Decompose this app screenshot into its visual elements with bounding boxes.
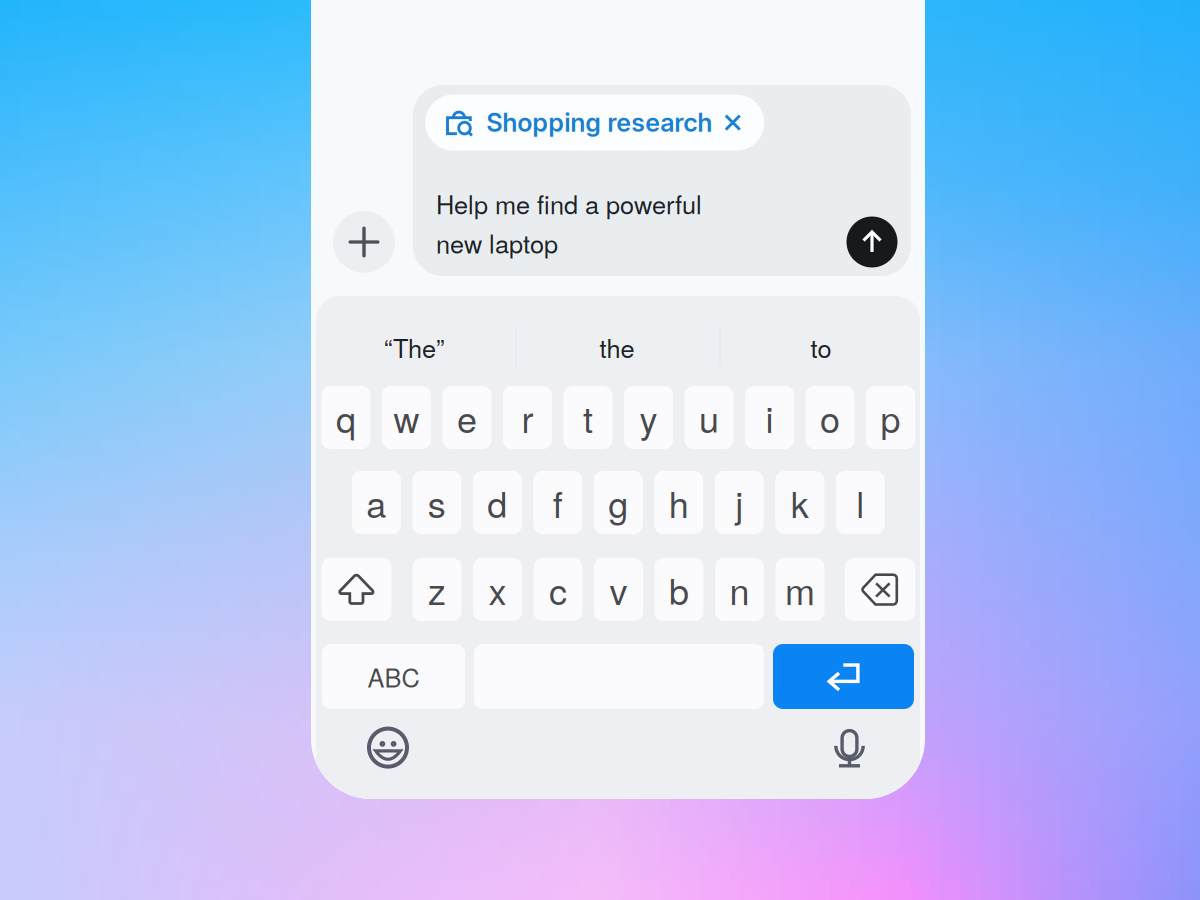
staticText: the: [599, 329, 634, 365]
staticText: n: [729, 564, 749, 615]
staticText: ABC: [367, 658, 419, 695]
button[interactable]: f: [533, 471, 582, 534]
staticText: c: [549, 564, 567, 615]
staticText: b: [669, 564, 689, 615]
button[interactable]: Dictate: [820, 717, 878, 775]
button[interactable]: w: [382, 386, 431, 449]
button[interactable]: z: [412, 558, 461, 621]
button[interactable]: the: [517, 316, 717, 378]
staticText: Help me find a powerful: [436, 185, 702, 221]
staticText: l: [856, 477, 864, 528]
staticText: t: [583, 392, 593, 443]
button[interactable]: Shopping research: [425, 95, 764, 151]
button[interactable]: s: [412, 471, 461, 534]
button[interactable]: Send: [846, 216, 897, 267]
button[interactable]: b: [654, 558, 703, 621]
button[interactable]: u: [684, 386, 733, 449]
button[interactable]: Shift: [321, 558, 391, 621]
button[interactable]: y: [624, 386, 673, 449]
button[interactable]: o: [805, 386, 854, 449]
staticText: s: [428, 477, 446, 528]
button[interactable]: Delete: [845, 558, 915, 621]
staticText: p: [880, 392, 900, 443]
staticText: r: [521, 392, 533, 443]
staticText: new laptop: [436, 224, 558, 261]
staticText: m: [785, 564, 815, 615]
button[interactable]: v: [594, 558, 643, 621]
button[interactable]: g: [594, 471, 643, 534]
button[interactable]: to: [721, 316, 921, 378]
button[interactable]: i: [745, 386, 794, 449]
button[interactable]: d: [473, 471, 522, 534]
button[interactable]: ABC: [322, 644, 465, 709]
button[interactable]: l: [836, 471, 885, 534]
staticText: x: [488, 564, 506, 615]
staticText: z: [428, 564, 446, 615]
staticText: o: [820, 392, 840, 443]
staticText: h: [669, 477, 689, 528]
button[interactable]: j: [715, 471, 764, 534]
button[interactable]: t: [563, 386, 612, 449]
staticText: f: [553, 477, 563, 528]
staticText: “The”: [384, 329, 444, 365]
button[interactable]: c: [533, 558, 582, 621]
button[interactable]: Return: [773, 644, 914, 709]
button[interactable]: p: [866, 386, 915, 449]
staticText: d: [487, 477, 507, 528]
staticText: e: [457, 392, 477, 443]
staticText: y: [639, 392, 657, 443]
staticText: g: [608, 477, 628, 528]
button[interactable]: e: [442, 386, 491, 449]
button[interactable]: k: [775, 471, 824, 534]
staticText: v: [609, 564, 627, 615]
button[interactable]: q: [321, 386, 370, 449]
staticText: j: [735, 477, 743, 528]
staticText: u: [699, 392, 719, 443]
button[interactable]: h: [654, 471, 703, 534]
staticText: to: [810, 329, 831, 365]
staticText: q: [336, 392, 356, 443]
button[interactable]: x: [473, 558, 522, 621]
button[interactable]: m: [775, 558, 824, 621]
staticText: k: [791, 477, 809, 528]
button[interactable]: Emoji: [359, 719, 417, 777]
staticText: Shopping research: [486, 107, 712, 138]
button[interactable]: a: [352, 471, 401, 534]
button[interactable]: r: [503, 386, 552, 449]
button[interactable]: Add attachment: [333, 211, 395, 273]
staticText: a: [366, 477, 386, 528]
button[interactable]: n: [715, 558, 764, 621]
staticText: w: [393, 392, 419, 443]
staticText: i: [765, 392, 773, 443]
button[interactable]: “The”: [314, 316, 514, 378]
